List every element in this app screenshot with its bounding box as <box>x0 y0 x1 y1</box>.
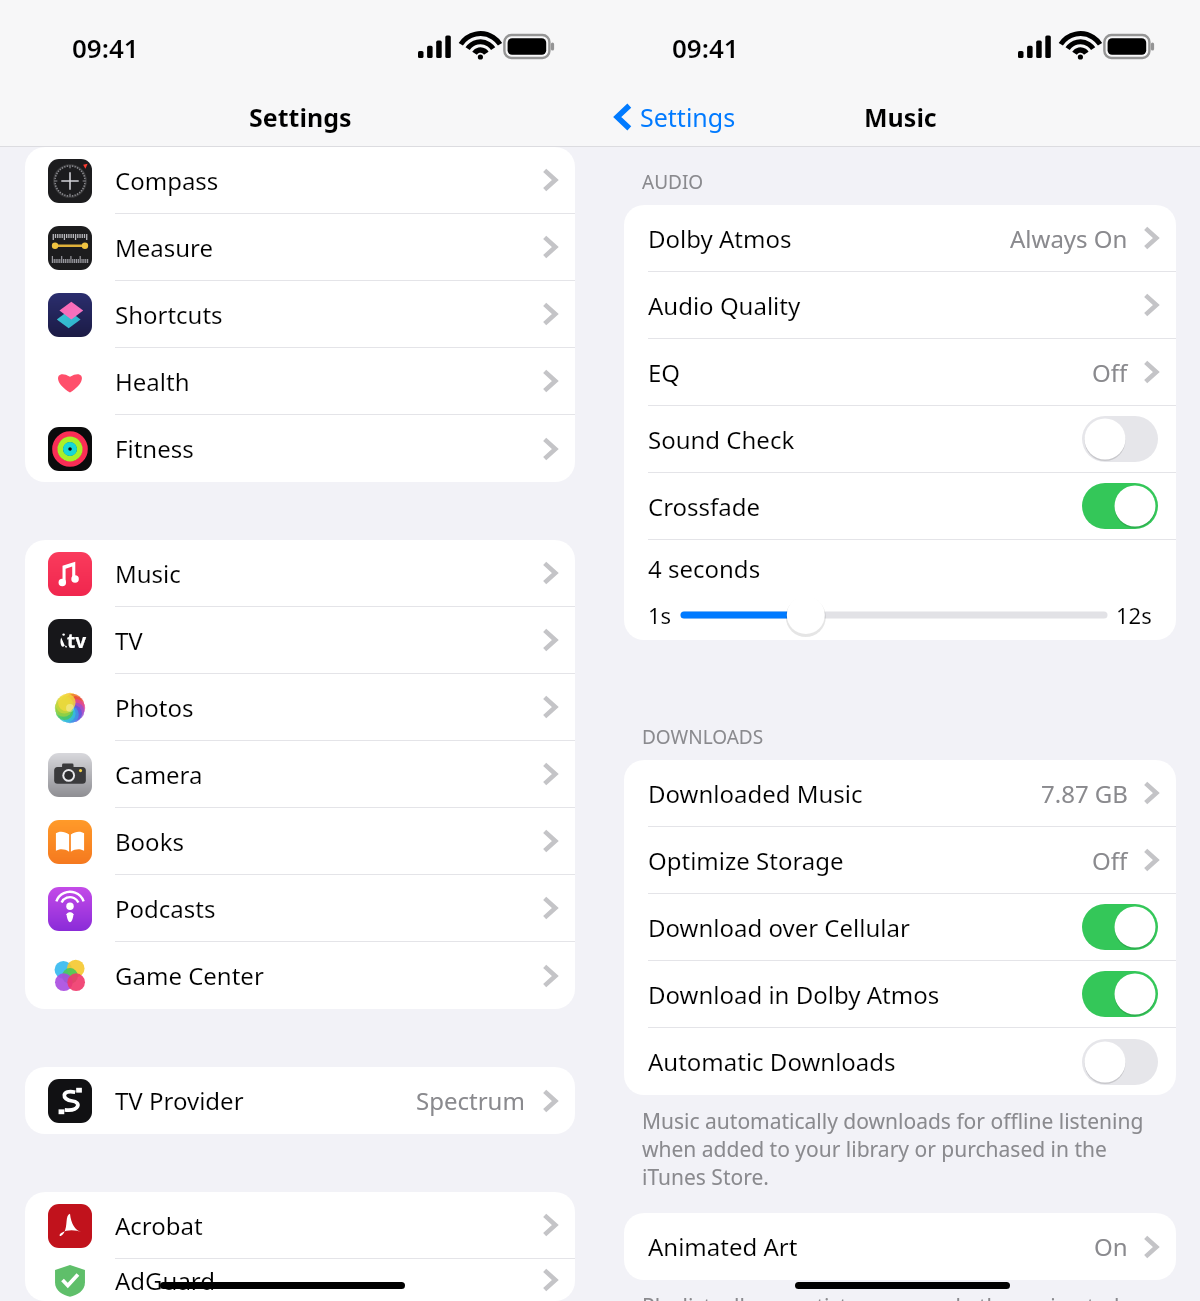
button[interactable]: Automatic Downloads <box>624 1028 1176 1095</box>
staticText: Shortcuts <box>115 298 223 331</box>
staticText: Sound Check <box>648 423 795 456</box>
staticText: Acrobat <box>115 1209 203 1242</box>
staticText: Spectrum <box>416 1084 525 1117</box>
button[interactable]: Crossfade <box>624 473 1176 540</box>
staticText: Camera <box>115 758 203 791</box>
staticText: Health <box>115 365 190 398</box>
staticText: Off <box>1092 356 1128 389</box>
staticText: On <box>1094 1230 1128 1263</box>
staticText: 09:41 <box>72 30 139 65</box>
staticText: Audio Quality <box>648 289 801 322</box>
staticText: Music <box>115 557 181 590</box>
staticText: Game Center <box>115 959 264 992</box>
staticText: TV Provider <box>115 1084 244 1117</box>
staticText: Settings <box>249 100 352 134</box>
staticText: tv <box>67 628 87 654</box>
button[interactable]: Download over Cellular <box>624 894 1176 961</box>
staticText: Download over Cellular <box>648 911 910 944</box>
button[interactable]: On <box>1082 971 1158 1017</box>
button[interactable]: Compass <box>25 147 575 214</box>
button[interactable]: Settings <box>614 100 736 134</box>
staticText: Measure <box>115 231 214 264</box>
staticText: 7.87 GB <box>1041 777 1128 810</box>
button[interactable]: Sound Check <box>624 406 1176 473</box>
staticText: 4 seconds <box>648 552 761 585</box>
button[interactable]: TV Provider <box>25 1067 575 1134</box>
staticText: Music automatically downloads for offlin… <box>642 1107 1158 1191</box>
staticText: Playlist, album, artist pages, and other… <box>642 1292 1158 1301</box>
staticText: Automatic Downloads <box>648 1045 896 1078</box>
button[interactable]: On <box>1082 904 1158 950</box>
button[interactable]: Measure <box>25 214 575 281</box>
button[interactable]: Shortcuts <box>25 281 575 348</box>
button[interactable]: Game Center <box>25 942 575 1009</box>
button[interactable]: Crossfade duration <box>684 595 1104 635</box>
staticText: 09:41 <box>672 30 739 65</box>
staticText: Settings <box>640 100 736 134</box>
button[interactable]: Acrobat <box>25 1192 575 1259</box>
staticText: Books <box>115 825 184 858</box>
button[interactable]: Optimize Storage <box>624 827 1176 894</box>
button[interactable]: Health <box>25 348 575 415</box>
button[interactable]: Music <box>25 540 575 607</box>
button[interactable]: EQ <box>624 339 1176 406</box>
button[interactable]: Dolby Atmos <box>624 205 1176 272</box>
staticText: Compass <box>115 164 219 197</box>
button[interactable]: AdGuard <box>25 1259 575 1301</box>
staticText: Podcasts <box>115 892 216 925</box>
staticText: Dolby Atmos <box>648 222 792 255</box>
button[interactable]: Animated Art <box>624 1213 1176 1280</box>
button[interactable]: Books <box>25 808 575 875</box>
staticText: 1s <box>648 600 672 630</box>
staticText: EQ <box>648 356 681 389</box>
staticText: Fitness <box>115 432 194 465</box>
button[interactable]: Podcasts <box>25 875 575 942</box>
staticText: Photos <box>115 691 194 724</box>
button[interactable]: Camera <box>25 741 575 808</box>
staticText: Always On <box>1010 222 1128 255</box>
button[interactable]: tv <box>25 607 575 674</box>
staticText: AUDIO <box>642 169 704 195</box>
button[interactable]: Fitness <box>25 415 575 482</box>
button[interactable]: Photos <box>25 674 575 741</box>
button[interactable]: Off <box>1082 416 1158 462</box>
button[interactable]: On <box>1082 483 1158 529</box>
button[interactable]: Audio Quality <box>624 272 1176 339</box>
staticText: TV <box>115 624 143 657</box>
staticText: Music <box>864 100 937 134</box>
staticText: Off <box>1092 844 1128 877</box>
button[interactable]: Download in Dolby Atmos <box>624 961 1176 1028</box>
staticText: Download in Dolby Atmos <box>648 978 940 1011</box>
button[interactable]: Off <box>1082 1039 1158 1085</box>
staticText: Crossfade <box>648 490 761 523</box>
staticText: Animated Art <box>648 1230 798 1263</box>
staticText: 12s <box>1116 600 1152 630</box>
button[interactable]: Downloaded Music <box>624 760 1176 827</box>
staticText: Optimize Storage <box>648 844 844 877</box>
staticText: Downloaded Music <box>648 777 863 810</box>
staticText: AdGuard <box>115 1264 216 1297</box>
staticText: DOWNLOADS <box>642 724 764 750</box>
